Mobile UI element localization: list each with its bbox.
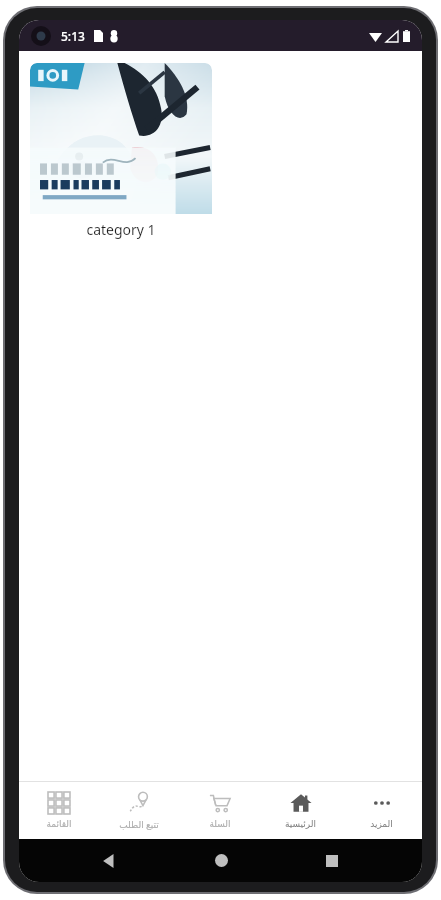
button[interactable]: category 1 [30, 63, 212, 245]
staticText: 5:13 [61, 28, 85, 44]
button[interactable]: Home [260, 782, 341, 839]
button[interactable]: Cart [179, 782, 260, 839]
button[interactable]: Home [199, 839, 243, 882]
staticText: السلة [209, 819, 231, 829]
button[interactable]: Back [87, 839, 131, 882]
staticText: المزيد [370, 819, 393, 829]
staticText: تتبع الطلب [119, 818, 159, 830]
staticText: الرئيسية [285, 819, 316, 829]
button[interactable]: Menu [19, 782, 99, 839]
staticText: القائمة [46, 819, 72, 829]
button[interactable]: Track order [99, 782, 179, 839]
button[interactable]: Recent apps [310, 839, 354, 882]
staticText: category 1 [86, 220, 156, 239]
button[interactable]: More [341, 782, 422, 839]
